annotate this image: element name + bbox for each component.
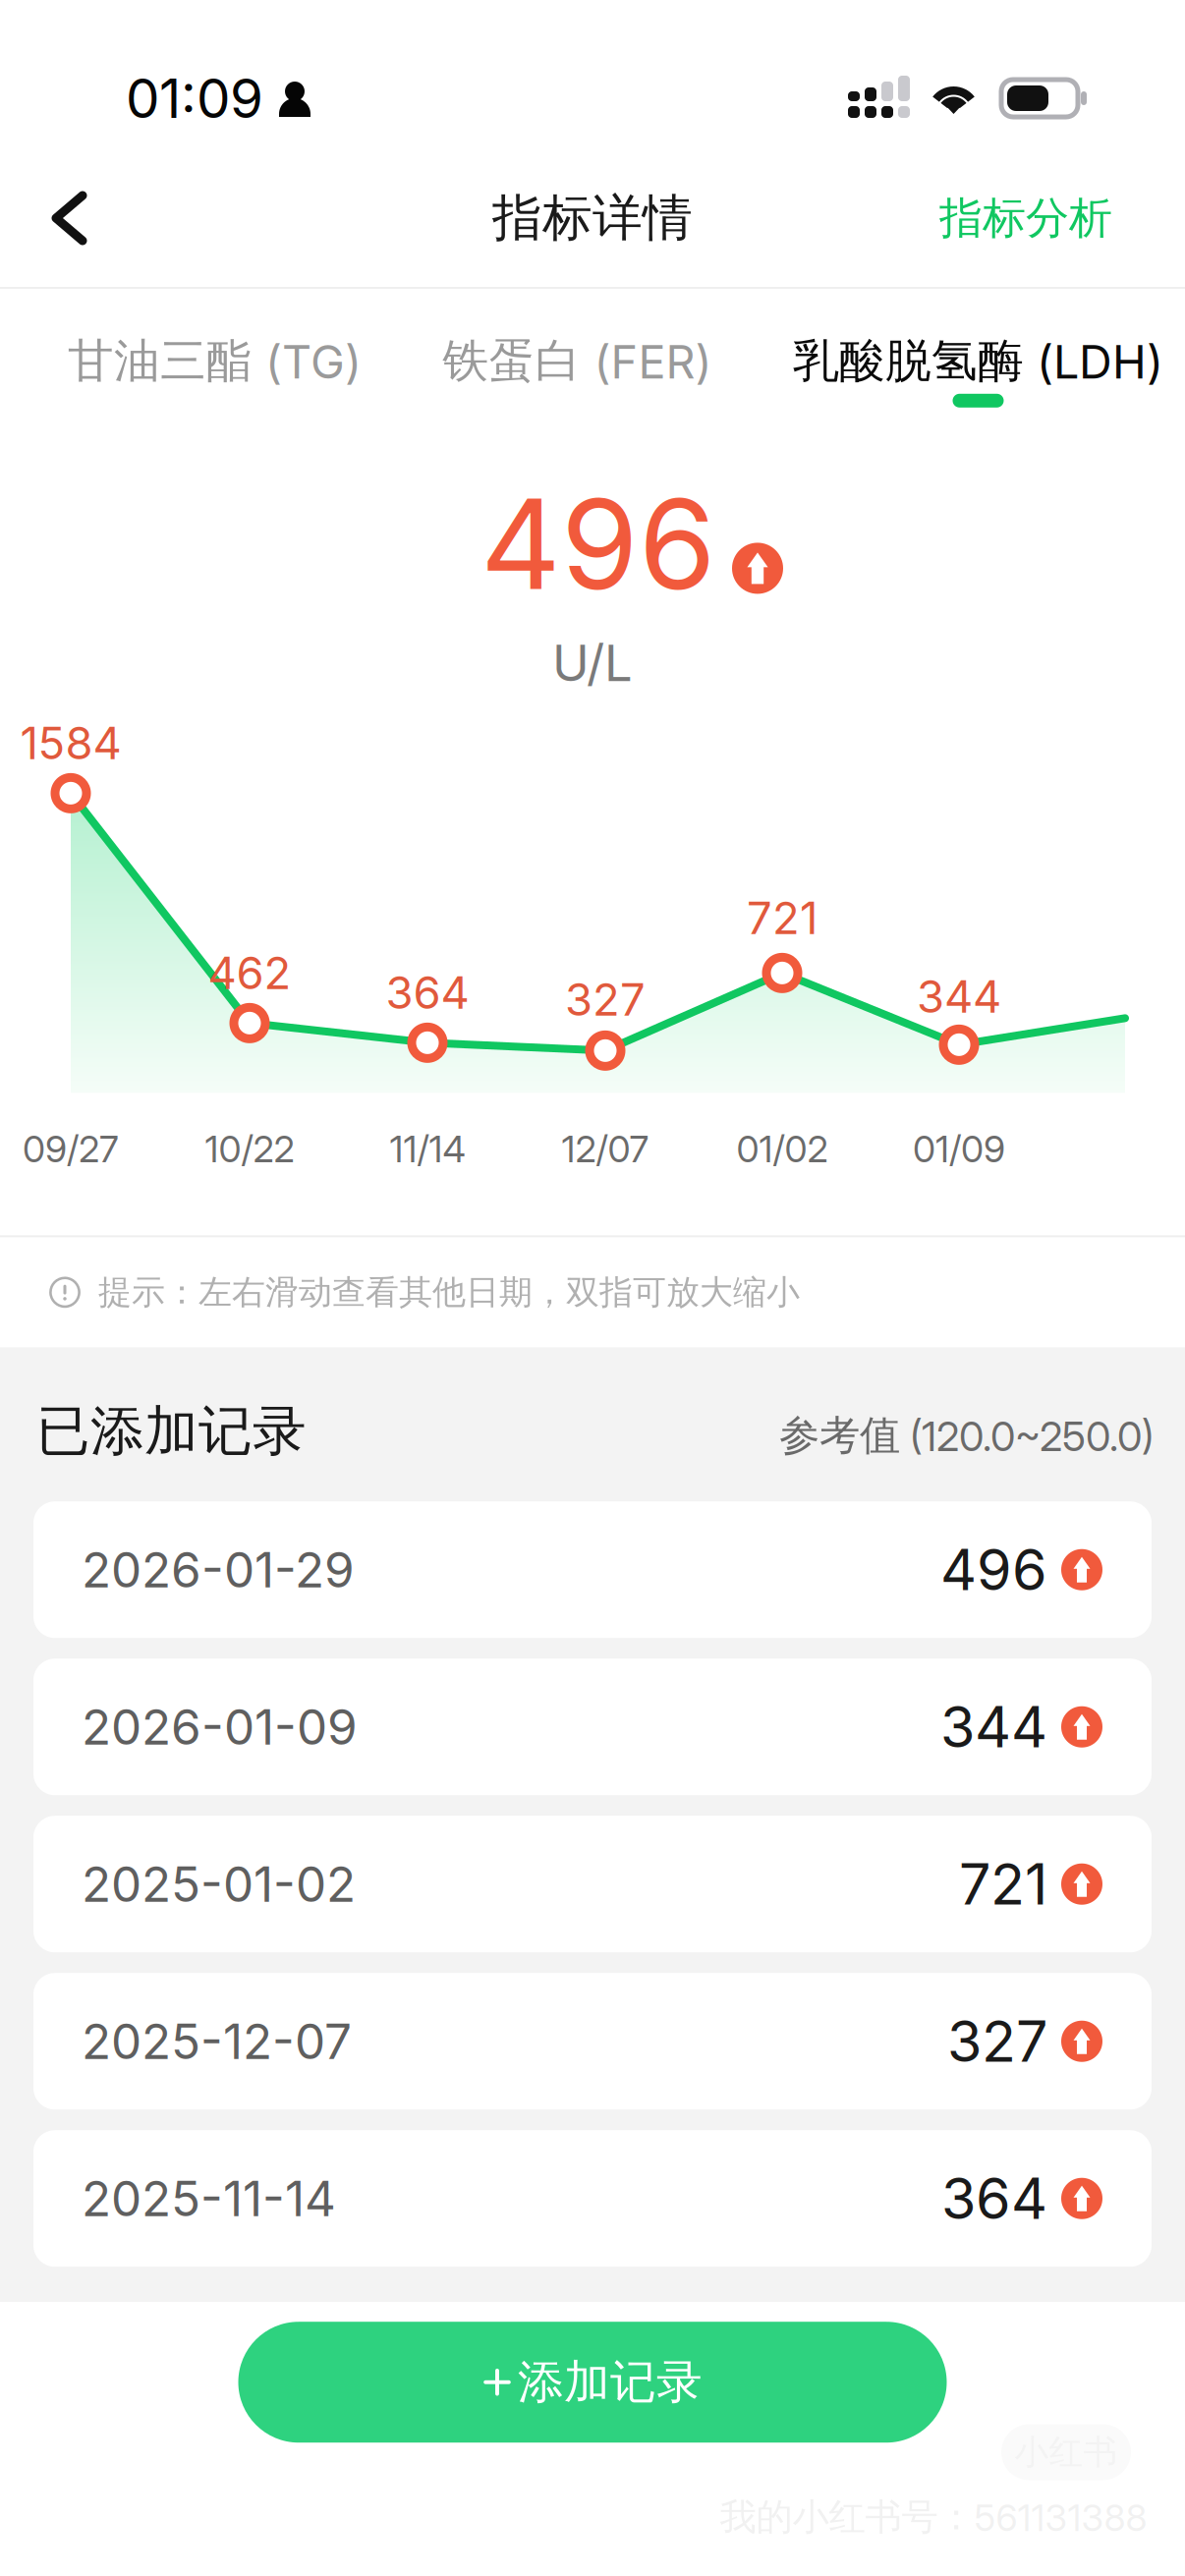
- staticText: 364: [386, 966, 469, 1020]
- staticText: 12/07: [562, 1127, 649, 1171]
- staticText: 指标分析: [939, 191, 1112, 245]
- staticText: 01/09: [913, 1127, 1005, 1171]
- staticText: 11/14: [390, 1127, 465, 1171]
- staticText: 2026-01-29: [82, 1540, 355, 1599]
- staticText: 2025-11-14: [82, 2169, 336, 2228]
- staticText: 已添加记录: [36, 1397, 307, 1465]
- staticText: 344: [917, 970, 1001, 1024]
- button[interactable]: 2025-12-07: [33, 1973, 1152, 2110]
- button[interactable]: 乳酸脱氢酶 (LDH): [793, 332, 1163, 408]
- button[interactable]: 添加记录: [238, 2322, 947, 2443]
- staticText: 甘油三酯 (TG): [68, 332, 362, 390]
- staticText: 10/22: [205, 1127, 294, 1171]
- staticText: 462: [208, 946, 291, 1000]
- staticText: 2025-12-07: [82, 2012, 352, 2071]
- staticText: 327: [947, 2007, 1047, 2075]
- button[interactable]: Back: [0, 155, 126, 281]
- staticText: 01:09: [126, 66, 263, 131]
- staticText: 496: [940, 1536, 1047, 1604]
- button[interactable]: 铁蛋白 (FER): [443, 332, 712, 390]
- button[interactable]: 2025-11-14: [33, 2130, 1152, 2267]
- staticText: 327: [565, 973, 646, 1026]
- button[interactable]: 甘油三酯 (TG): [68, 332, 362, 390]
- staticText: U/L: [552, 633, 633, 693]
- staticText: 乳酸脱氢酶 (LDH): [793, 332, 1163, 390]
- staticText: 2025-01-02: [82, 1855, 356, 1913]
- staticText: 指标详情: [492, 187, 693, 249]
- staticText: 添加记录: [518, 2353, 703, 2411]
- staticText: 2026-01-09: [82, 1698, 358, 1756]
- staticText: 09/27: [23, 1127, 119, 1171]
- staticText: 提示：左右滑动查看其他日期，双指可放大缩小: [98, 1271, 800, 1313]
- staticText: 参考值 (120.0~250.0): [779, 1410, 1154, 1461]
- staticText: 364: [941, 2164, 1047, 2233]
- staticText: 344: [940, 1693, 1047, 1761]
- button[interactable]: 指标分析: [900, 154, 1185, 283]
- staticText: 铁蛋白 (FER): [443, 332, 712, 390]
- staticText: 1584: [20, 716, 121, 770]
- button[interactable]: 2026-01-29: [33, 1501, 1152, 1638]
- staticText: 721: [959, 1850, 1047, 1918]
- staticText: 496: [480, 468, 716, 619]
- staticText: 我的小红书号：561131388: [720, 2494, 1147, 2540]
- button[interactable]: 2026-01-09: [33, 1659, 1152, 1795]
- staticText: 721: [747, 891, 818, 945]
- button[interactable]: 2025-01-02: [33, 1816, 1152, 1952]
- staticText: 01/02: [736, 1127, 828, 1171]
